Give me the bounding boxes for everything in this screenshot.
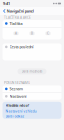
button[interactable]: Další možnosti — [17, 68, 46, 74]
staticText: Seznam — [10, 86, 23, 91]
staticText: C — [47, 31, 49, 35]
staticText: Další odkaz — [5, 114, 24, 118]
staticText: B — [31, 31, 33, 35]
staticText: Hledáte něco? — [5, 103, 29, 108]
staticText: Další možnosti — [21, 69, 42, 73]
button[interactable]: Nastavení vzhledu — [2, 109, 61, 114]
staticText: Tlačítka — [10, 21, 23, 26]
staticText: TLAČÍTKA A AKCE — [4, 15, 31, 20]
button[interactable]: Tlačítka — [2, 20, 61, 27]
staticText: Navigační panel — [7, 8, 34, 14]
button[interactable]: A — [13, 32, 18, 35]
button[interactable]: B — [29, 32, 34, 35]
button[interactable]: Navigační panel — [3, 8, 34, 14]
staticText: Nastavení vzhledu — [5, 109, 36, 113]
button[interactable]: C — [45, 32, 50, 35]
button[interactable]: Cesta poslední — [2, 43, 61, 50]
staticText: POSUN SEZNAMU — [4, 81, 30, 85]
button[interactable]: Další odkaz — [2, 114, 61, 119]
button[interactable]: Seznam — [2, 85, 61, 92]
staticText: 9:41 — [3, 1, 10, 6]
button[interactable]: Nastavení — [2, 93, 61, 100]
staticText: A — [15, 31, 17, 35]
staticText: Nastavení — [10, 94, 27, 99]
staticText: Cesta poslední — [10, 44, 34, 49]
